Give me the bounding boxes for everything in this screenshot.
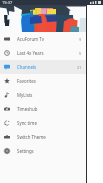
staticText: 19:37 xyxy=(2,0,13,5)
staticText: Favorites xyxy=(17,78,36,84)
staticText: 9 xyxy=(79,37,82,42)
button[interactable]: AcuForum Tv xyxy=(0,32,86,46)
button[interactable]: Settings xyxy=(0,144,86,158)
staticText: Settings xyxy=(17,148,34,154)
staticText: AcuForum Tv xyxy=(17,36,44,42)
staticText: MyLists xyxy=(17,92,33,98)
button[interactable]: Timeshub xyxy=(0,102,86,116)
button[interactable]: Switch Theme xyxy=(0,130,86,144)
button[interactable]: Favorites xyxy=(0,74,86,88)
staticText: Timeshub xyxy=(17,106,38,112)
staticText: 21 xyxy=(77,65,82,70)
button[interactable]: Channels xyxy=(0,60,86,74)
staticText: Last 4x Years xyxy=(17,50,44,56)
button[interactable]: Sync time xyxy=(0,116,86,130)
button[interactable]: Last 4x Years xyxy=(0,46,86,60)
staticText: Channels xyxy=(17,64,37,70)
staticText: 5 xyxy=(79,51,82,56)
staticText: Sync time xyxy=(17,120,37,126)
button[interactable]: MyLists xyxy=(0,88,86,102)
staticText: Switch Theme xyxy=(17,134,46,140)
